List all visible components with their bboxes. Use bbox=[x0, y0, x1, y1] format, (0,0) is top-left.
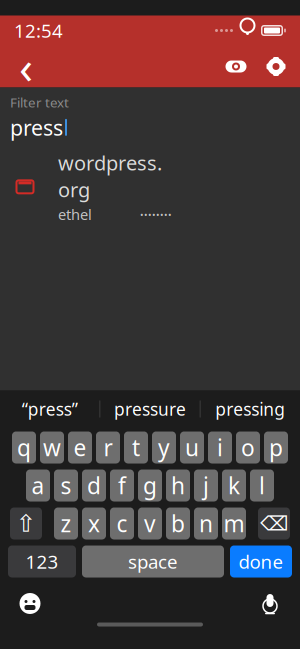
button[interactable]: Dictate bbox=[248, 588, 292, 618]
staticText: d bbox=[87, 470, 101, 500]
button[interactable]: p bbox=[264, 431, 288, 463]
button[interactable]: s bbox=[54, 469, 78, 501]
staticText: ⇧ bbox=[16, 510, 36, 537]
staticText: i bbox=[217, 432, 223, 462]
staticText: r bbox=[103, 432, 112, 462]
staticText: k bbox=[228, 470, 240, 500]
button[interactable]: k bbox=[222, 469, 246, 501]
staticText: space bbox=[128, 549, 178, 574]
staticText: y bbox=[158, 432, 170, 462]
button[interactable]: Settings bbox=[256, 46, 296, 86]
staticText: pressure bbox=[114, 397, 186, 420]
staticText: g bbox=[143, 470, 157, 500]
staticText: wordpress.org bbox=[58, 149, 162, 203]
staticText: •••••••• bbox=[140, 208, 172, 221]
button[interactable]: Emoji bbox=[8, 588, 52, 618]
staticText: s bbox=[60, 470, 71, 500]
staticText: t bbox=[132, 432, 140, 462]
staticText: m bbox=[223, 508, 244, 538]
staticText: b bbox=[171, 508, 185, 538]
staticText: a bbox=[31, 470, 44, 500]
button[interactable]: w bbox=[40, 431, 64, 463]
button[interactable]: Shift bbox=[10, 507, 42, 539]
button[interactable]: h bbox=[166, 469, 190, 501]
button[interactable]: t bbox=[124, 431, 148, 463]
staticText: z bbox=[60, 508, 71, 538]
staticText: “press” bbox=[22, 397, 78, 420]
button[interactable]: v bbox=[138, 507, 162, 539]
staticText: l bbox=[259, 470, 265, 500]
button[interactable]: Delete bbox=[258, 507, 290, 539]
staticText: n bbox=[199, 508, 213, 538]
button[interactable]: u bbox=[180, 431, 204, 463]
button[interactable]: Show passwords bbox=[216, 46, 256, 86]
staticText: pressing bbox=[215, 397, 285, 420]
staticText: 123 bbox=[25, 549, 58, 574]
staticText: h bbox=[171, 470, 185, 500]
staticText: press bbox=[10, 113, 63, 141]
button[interactable]: Back bbox=[4, 46, 48, 86]
button[interactable]: b bbox=[166, 507, 190, 539]
staticText: ⌫ bbox=[260, 512, 288, 535]
button[interactable]: q bbox=[12, 431, 36, 463]
button[interactable]: m bbox=[222, 507, 246, 539]
staticText: Filter text bbox=[10, 93, 69, 111]
staticText: c bbox=[116, 508, 127, 538]
staticText: 12:54 bbox=[14, 18, 63, 43]
staticText: x bbox=[88, 508, 100, 538]
button[interactable]: e bbox=[68, 431, 92, 463]
staticText: p bbox=[269, 432, 283, 462]
button[interactable]: x bbox=[82, 507, 106, 539]
staticText: ‹ bbox=[19, 36, 33, 97]
button[interactable]: done bbox=[230, 545, 292, 577]
staticText: w bbox=[43, 432, 61, 462]
staticText: o bbox=[241, 432, 255, 462]
button[interactable]: g bbox=[138, 469, 162, 501]
staticText: j bbox=[203, 470, 209, 500]
button[interactable]: l bbox=[250, 469, 274, 501]
button[interactable]: y bbox=[152, 431, 176, 463]
button[interactable]: pressure bbox=[100, 390, 200, 427]
button[interactable]: n bbox=[194, 507, 218, 539]
button[interactable]: space bbox=[82, 545, 224, 577]
staticText: q bbox=[17, 432, 31, 462]
button[interactable]: “press” bbox=[0, 390, 99, 427]
staticText: ethel bbox=[58, 205, 92, 224]
button[interactable]: c bbox=[110, 507, 134, 539]
button[interactable]: i bbox=[208, 431, 232, 463]
button[interactable]: r bbox=[96, 431, 120, 463]
button[interactable]: o bbox=[236, 431, 260, 463]
button[interactable]: wordpress.org bbox=[0, 141, 300, 224]
button[interactable]: pressing bbox=[201, 390, 300, 427]
staticText: e bbox=[73, 432, 86, 462]
staticText: v bbox=[144, 508, 156, 538]
staticText: done bbox=[238, 549, 283, 574]
button[interactable]: z bbox=[54, 507, 78, 539]
button[interactable]: a bbox=[26, 469, 50, 501]
button[interactable]: 123 bbox=[8, 545, 76, 577]
staticText: f bbox=[118, 470, 126, 500]
button[interactable]: d bbox=[82, 469, 106, 501]
staticText: u bbox=[185, 432, 199, 462]
button[interactable]: f bbox=[110, 469, 134, 501]
button[interactable]: j bbox=[194, 469, 218, 501]
